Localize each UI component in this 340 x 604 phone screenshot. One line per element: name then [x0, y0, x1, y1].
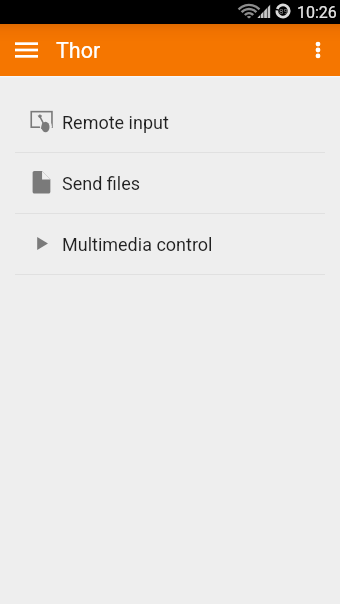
staticText: Send files	[62, 173, 140, 194]
button[interactable]: More options	[296, 28, 340, 72]
staticText: 89	[279, 7, 288, 16]
staticText: Thor	[56, 38, 101, 63]
button[interactable]: Remote input	[0, 92, 340, 152]
staticText: 10:26	[297, 3, 337, 22]
button[interactable]: Multimedia control	[0, 214, 340, 274]
staticText: Multimedia control	[62, 234, 213, 255]
button[interactable]: Navigation menu	[4, 28, 48, 72]
button[interactable]: Send files	[0, 153, 340, 213]
staticText: Remote input	[62, 112, 169, 133]
